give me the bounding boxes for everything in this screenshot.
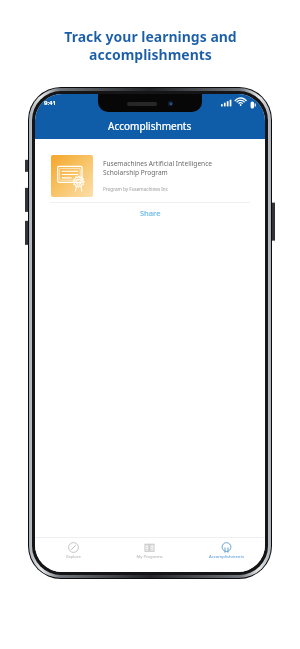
- staticText: Track your learnings and accomplishments: [64, 27, 237, 64]
- staticText: Fusemachines Artificial Intelligence Sch…: [103, 159, 213, 177]
- button[interactable]: Fusemachines Artificial Intelligence Sch…: [45, 149, 255, 223]
- staticText: Share: [140, 208, 161, 218]
- staticText: My Programs: [136, 554, 163, 560]
- staticText: Accomplishments: [108, 119, 192, 133]
- button[interactable]: My Programs: [111, 538, 188, 564]
- staticText: Program by Fusemachines Inc: [103, 186, 168, 192]
- button[interactable]: Accomplishments: [188, 538, 265, 564]
- staticText: 9:41: [44, 99, 56, 107]
- staticText: Accomplishments: [209, 554, 244, 560]
- staticText: Explore: [66, 554, 81, 560]
- button[interactable]: Explore: [35, 538, 111, 564]
- button[interactable]: Share: [45, 203, 255, 223]
